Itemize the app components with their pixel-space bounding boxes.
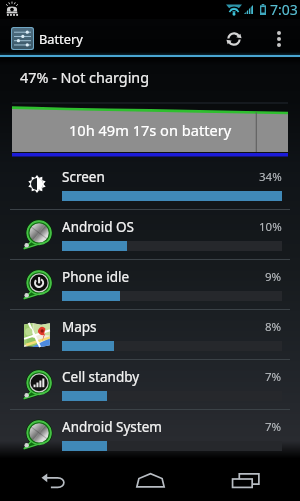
button[interactable]: Cell standby	[0, 360, 300, 409]
staticText: Android System	[62, 418, 162, 436]
staticText: 7%	[265, 419, 282, 435]
staticText: 9%	[265, 269, 282, 285]
button[interactable]: Settings	[12, 28, 33, 49]
staticText: 7%	[265, 369, 282, 385]
staticText: Maps	[62, 318, 97, 336]
staticText: 10%	[259, 219, 282, 235]
staticText: Phone idle	[62, 268, 130, 286]
staticText: 7:03	[270, 0, 298, 19]
staticText: 47% - Not charging	[20, 68, 150, 88]
button[interactable]: Refresh	[210, 19, 258, 58]
button[interactable]: Screen	[0, 159, 300, 209]
button[interactable]: Home	[108, 460, 192, 501]
button[interactable]: Maps	[0, 310, 300, 359]
staticText: Android OS	[62, 218, 134, 236]
button[interactable]: Recent apps	[204, 460, 288, 501]
button[interactable]: Back	[12, 460, 96, 501]
button[interactable]: Phone idle	[0, 260, 300, 309]
staticText: Screen	[62, 168, 105, 186]
button[interactable]: Android System	[0, 410, 300, 459]
staticText: 34%	[259, 169, 282, 185]
button[interactable]: Android OS	[0, 210, 300, 259]
staticText: 10h 49m 17s on battery	[69, 120, 232, 140]
button[interactable]: More options	[258, 19, 300, 58]
staticText: 8%	[265, 319, 282, 335]
staticText: Battery	[39, 30, 83, 47]
staticText: Cell standby	[62, 368, 140, 386]
